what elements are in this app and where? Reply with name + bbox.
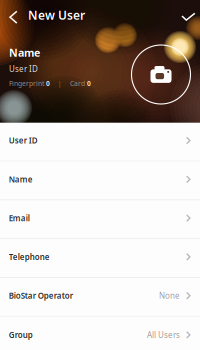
staticText: None bbox=[159, 290, 180, 301]
staticText: Email bbox=[9, 213, 30, 223]
button[interactable]: Email bbox=[0, 200, 200, 239]
staticText: 0 bbox=[46, 79, 50, 88]
staticText: New User bbox=[28, 7, 85, 23]
staticText: | bbox=[50, 79, 70, 88]
button[interactable]: Back bbox=[0, 2, 23, 28]
staticText: Card bbox=[70, 79, 87, 88]
staticText: 0 bbox=[87, 79, 91, 88]
staticText: Fingerprint bbox=[9, 79, 46, 88]
button[interactable]: Name bbox=[0, 161, 200, 200]
staticText: Name bbox=[9, 45, 40, 60]
staticText: Group bbox=[9, 330, 33, 340]
button[interactable]: Group bbox=[0, 317, 200, 350]
button[interactable]: Save bbox=[181, 2, 200, 28]
button[interactable]: BioStar Operator bbox=[0, 278, 200, 317]
button[interactable]: Add photo bbox=[131, 45, 190, 104]
button[interactable]: User ID bbox=[0, 123, 200, 161]
staticText: Name bbox=[9, 174, 33, 185]
staticText: All Users bbox=[147, 330, 180, 340]
staticText: Telephone bbox=[9, 252, 50, 262]
staticText: BioStar Operator bbox=[9, 290, 73, 301]
staticText: User ID bbox=[9, 135, 38, 146]
button[interactable]: Telephone bbox=[0, 239, 200, 278]
staticText: User ID bbox=[9, 64, 38, 74]
